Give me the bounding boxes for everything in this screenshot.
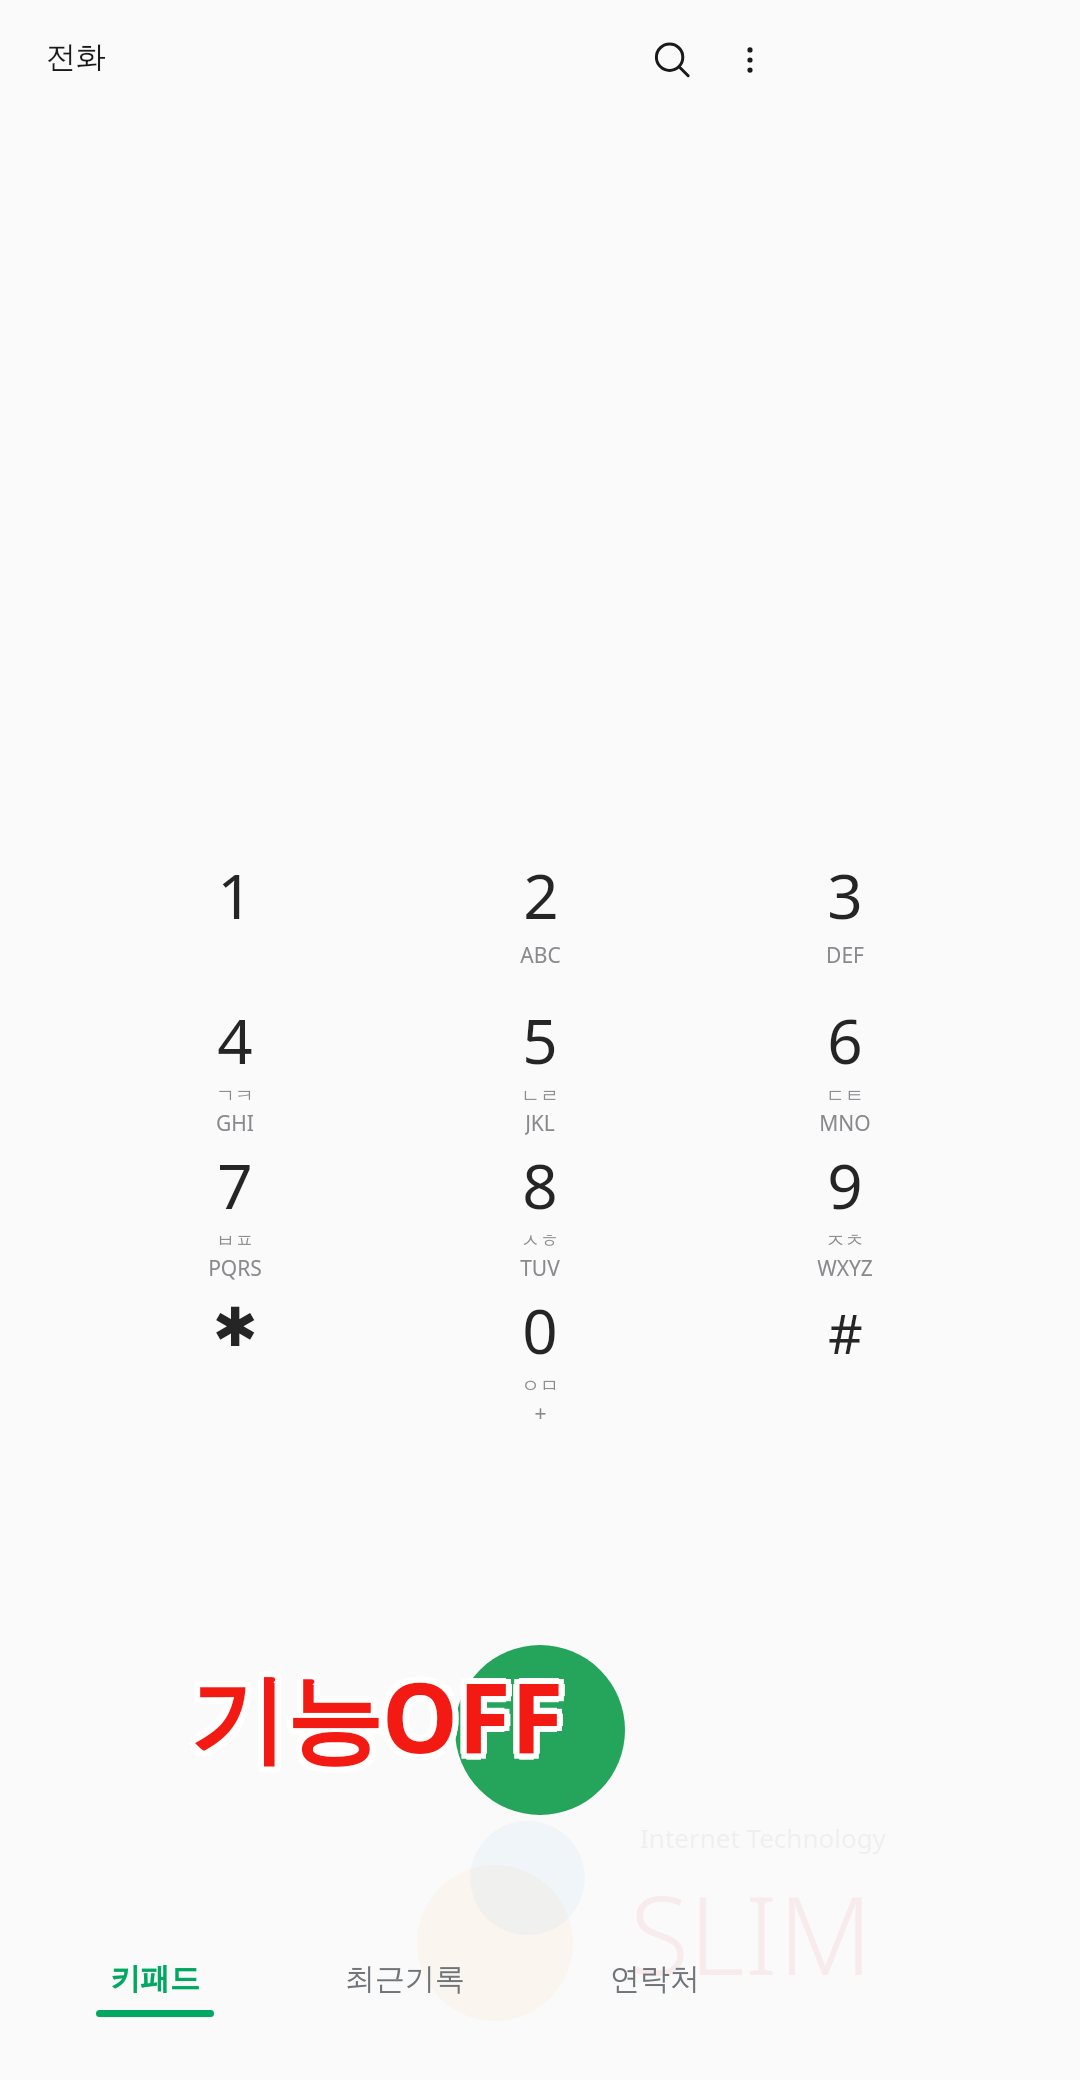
button[interactable]: More options bbox=[714, 24, 786, 96]
staticText: ㅅㅎ bbox=[521, 1229, 559, 1253]
staticText: 7 bbox=[217, 1143, 253, 1227]
button[interactable]: 4 bbox=[85, 990, 385, 1135]
staticText: ㅇㅁ bbox=[521, 1374, 559, 1398]
staticText: 기능OFF bbox=[190, 1650, 564, 1781]
staticText: WXYZ bbox=[817, 1254, 873, 1280]
button[interactable]: 7 bbox=[85, 1135, 385, 1280]
staticText: 기능OFF bbox=[184, 1650, 558, 1781]
staticText: ㄴㄹ bbox=[521, 1084, 559, 1108]
staticText: DEF bbox=[826, 941, 864, 970]
staticText: GHI bbox=[216, 1109, 254, 1135]
staticText: 최근기록 bbox=[345, 1960, 465, 1998]
staticText: ABC bbox=[520, 941, 561, 970]
staticText: 0 bbox=[522, 1288, 558, 1372]
button[interactable]: 2 bbox=[390, 845, 690, 990]
button[interactable]: 1 bbox=[85, 845, 385, 990]
button[interactable]: 연락처 bbox=[545, 1942, 765, 2052]
staticText: ㅂㅍ bbox=[216, 1229, 254, 1253]
staticText: ㄱㅋ bbox=[216, 1084, 254, 1108]
button[interactable]: 9 bbox=[695, 1135, 995, 1280]
button[interactable]: 5 bbox=[390, 990, 690, 1135]
staticText: 9 bbox=[827, 1143, 863, 1227]
button[interactable]: Search bbox=[636, 24, 708, 96]
staticText: 기능OFF bbox=[185, 1655, 559, 1786]
staticText: 기능OFF bbox=[190, 1656, 564, 1787]
staticText: ㅈㅊ bbox=[826, 1229, 864, 1253]
staticText: 3 bbox=[827, 853, 863, 937]
staticText: 연락처 bbox=[610, 1960, 700, 1998]
staticText: MNO bbox=[819, 1109, 871, 1135]
staticText: + bbox=[534, 1399, 547, 1425]
staticText: 기능OFF bbox=[185, 1645, 559, 1776]
button[interactable]: Call bbox=[455, 1645, 625, 1815]
staticText: 4 bbox=[217, 998, 253, 1082]
staticText: ㄷㅌ bbox=[826, 1084, 864, 1108]
button[interactable]: 8 bbox=[390, 1135, 690, 1280]
staticText: ✱ bbox=[212, 1296, 258, 1359]
staticText: 5 bbox=[522, 998, 558, 1082]
button[interactable]: 최근기록 bbox=[295, 1942, 515, 2052]
button[interactable]: 0 bbox=[390, 1280, 690, 1425]
staticText: 전화 bbox=[46, 38, 106, 76]
button[interactable]: ✱ bbox=[85, 1280, 385, 1425]
staticText: TUV bbox=[520, 1254, 560, 1280]
staticText: # bbox=[828, 1296, 863, 1370]
button[interactable]: 3 bbox=[695, 845, 995, 990]
staticText: 2 bbox=[523, 853, 559, 937]
staticText: Internet Technology bbox=[640, 1820, 886, 1855]
staticText: 키패드 bbox=[110, 1960, 200, 1998]
staticText: 기능OFF bbox=[195, 1655, 569, 1786]
staticText: 8 bbox=[522, 1143, 558, 1227]
button[interactable]: 키패드 bbox=[45, 1942, 265, 2052]
button[interactable]: # bbox=[695, 1280, 995, 1425]
staticText: PQRS bbox=[208, 1254, 262, 1280]
staticText: JKL bbox=[525, 1109, 555, 1135]
staticText: 기능OFF bbox=[196, 1650, 570, 1781]
staticText: 6 bbox=[827, 998, 863, 1082]
staticText: 1 bbox=[217, 853, 253, 937]
button[interactable]: 6 bbox=[695, 990, 995, 1135]
staticText: 기능OFF bbox=[195, 1645, 569, 1776]
staticText: 기능OFF bbox=[190, 1644, 564, 1775]
staticText: SLIM bbox=[630, 1860, 873, 2007]
